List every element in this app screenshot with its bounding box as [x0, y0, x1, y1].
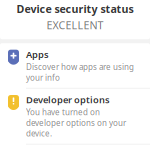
staticText: You have turned on developer options on … — [26, 107, 126, 139]
staticText: EXCELLENT — [46, 18, 103, 32]
staticText: Discover how apps are using your info — [26, 62, 134, 83]
staticText: Developer options — [26, 93, 110, 106]
button[interactable]: Developer options — [0, 88, 150, 144]
button[interactable]: Screen lock — [0, 144, 150, 150]
staticText: Apps — [26, 48, 49, 61]
button[interactable]: Apps — [0, 43, 150, 88]
staticText: Device security status — [16, 2, 133, 16]
